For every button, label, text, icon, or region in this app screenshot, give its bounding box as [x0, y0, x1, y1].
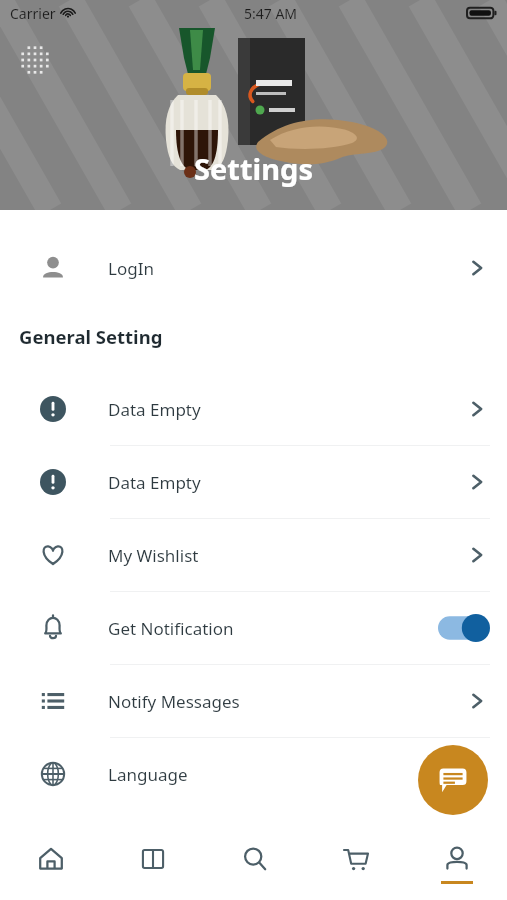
button[interactable]: Cart: [305, 827, 406, 900]
button[interactable]: Data Empty: [0, 373, 507, 445]
staticText: LogIn: [108, 257, 154, 280]
staticText: Data Empty: [108, 471, 201, 494]
button[interactable]: Data Empty: [0, 446, 507, 518]
staticText: General Setting: [19, 324, 163, 349]
staticText: Notify Messages: [108, 690, 240, 713]
button[interactable]: Language: [0, 738, 507, 810]
button[interactable]: Chat support: [418, 745, 488, 815]
button[interactable]: Notify Messages: [0, 665, 507, 737]
button[interactable]: Get Notification: [0, 592, 507, 664]
button[interactable]: My Wishlist: [0, 519, 507, 591]
button[interactable]: Menu grid: [19, 44, 51, 76]
staticText: 5:47 AM: [244, 4, 298, 23]
staticText: Language: [108, 763, 188, 786]
button[interactable]: Catalog: [102, 827, 204, 900]
button[interactable]: Account: [406, 827, 507, 900]
button[interactable]: Search: [204, 827, 305, 900]
staticText: Data Empty: [108, 398, 201, 421]
staticText: Settings: [194, 149, 313, 188]
button[interactable]: LogIn: [0, 232, 507, 304]
button[interactable]: Home: [0, 827, 102, 900]
staticText: My Wishlist: [108, 544, 199, 567]
staticText: Get Notification: [108, 617, 234, 640]
staticText: Carrier: [10, 4, 56, 23]
